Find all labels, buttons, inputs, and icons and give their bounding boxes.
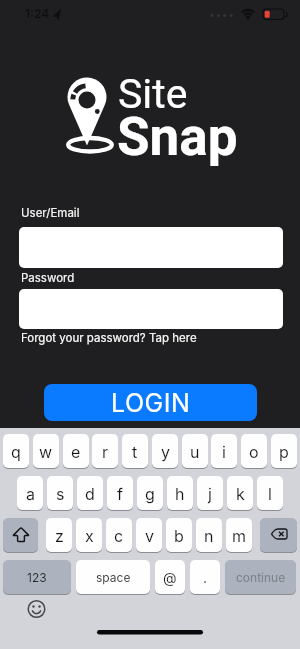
staticText: v [145, 526, 154, 545]
staticText: Forgot your password? Tap here [21, 331, 197, 345]
button[interactable]: i [211, 434, 237, 468]
button[interactable]: q [3, 434, 29, 468]
button[interactable] [3, 518, 38, 552]
button[interactable]: Forgot your password? Tap here [19, 331, 195, 345]
staticText: b [174, 526, 184, 545]
button[interactable]: j [197, 476, 223, 510]
button[interactable]: c [106, 518, 132, 552]
staticText: q [11, 442, 21, 461]
staticText: @ [163, 569, 177, 586]
staticText: z [55, 526, 64, 545]
staticText: continue [236, 570, 286, 585]
staticText: space [96, 570, 131, 585]
staticText: i [222, 442, 226, 461]
button[interactable]: w [33, 434, 59, 468]
button[interactable]: l [257, 476, 283, 510]
button[interactable]: b [166, 518, 192, 552]
staticText: w [39, 442, 53, 461]
button[interactable]: r [92, 434, 118, 468]
staticText: u [190, 442, 200, 461]
button[interactable]: y [152, 434, 178, 468]
staticText: 1:24 [25, 6, 50, 21]
button[interactable]: m [226, 518, 252, 552]
button[interactable] [19, 289, 283, 329]
staticText: a [26, 484, 35, 503]
staticText: f [117, 484, 123, 503]
staticText: Password [21, 271, 75, 285]
staticText: 123 [27, 570, 47, 585]
staticText: o [249, 442, 259, 461]
button[interactable]: s [47, 476, 73, 510]
staticText: d [85, 484, 95, 503]
button[interactable]: continue [225, 560, 296, 594]
button[interactable]: . [190, 560, 220, 594]
button[interactable]: o [241, 434, 267, 468]
staticText: Snap [117, 106, 238, 168]
button[interactable]: u [182, 434, 208, 468]
button[interactable]: g [137, 476, 163, 510]
button[interactable]: a [17, 476, 43, 510]
staticText: LOGIN [111, 388, 191, 418]
button[interactable]: h [167, 476, 193, 510]
button[interactable]: d [77, 476, 103, 510]
button[interactable]: n [196, 518, 222, 552]
staticText: t [132, 442, 138, 461]
staticText: h [175, 484, 185, 503]
button[interactable]: x [76, 518, 102, 552]
staticText: n [204, 526, 214, 545]
button[interactable]: z [46, 518, 72, 552]
staticText: s [56, 484, 65, 503]
staticText: x [85, 526, 94, 545]
staticText: k [236, 484, 245, 503]
staticText: Site [118, 70, 188, 118]
staticText: y [161, 442, 170, 461]
button[interactable] [260, 518, 297, 552]
button[interactable]: LOGIN [44, 384, 257, 421]
staticText: l [268, 484, 272, 503]
staticText: m [232, 526, 247, 545]
button[interactable]: p [271, 434, 297, 468]
button[interactable]: k [227, 476, 253, 510]
staticText: User/Email [21, 206, 80, 220]
button[interactable]: e [63, 434, 89, 468]
button[interactable]: f [107, 476, 133, 510]
staticText: p [279, 442, 289, 461]
staticText: r [102, 442, 109, 461]
button[interactable]: t [122, 434, 148, 468]
button[interactable]: v [136, 518, 162, 552]
staticText: j [208, 484, 212, 503]
staticText: c [114, 526, 124, 545]
staticText: . [203, 569, 208, 586]
staticText: g [145, 484, 155, 503]
button[interactable]: space [76, 560, 150, 594]
staticText: e [71, 442, 81, 461]
button[interactable] [19, 227, 283, 268]
button[interactable]: @ [155, 560, 185, 594]
button[interactable]: 123 [3, 560, 71, 594]
